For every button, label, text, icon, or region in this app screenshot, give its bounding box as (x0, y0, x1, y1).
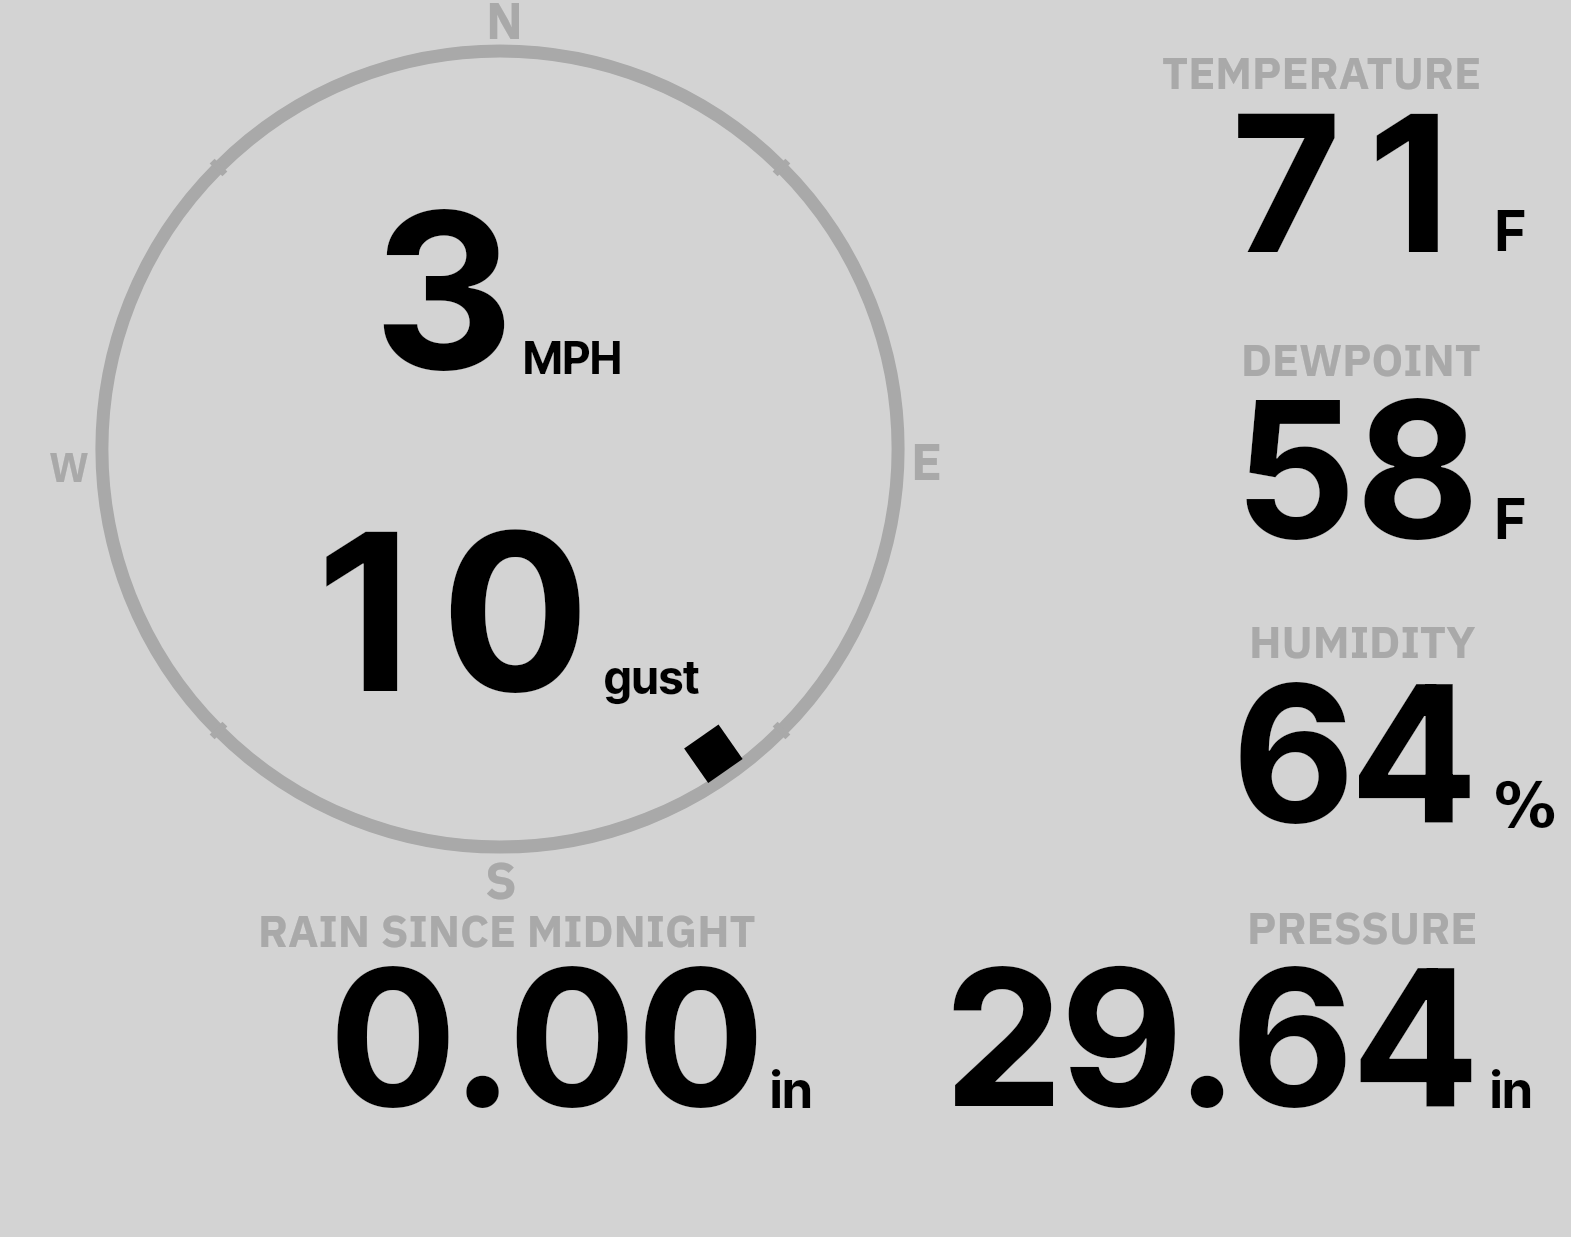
staticText: RAIN SINCE MIDNIGHT (258, 901, 756, 959)
staticText: gust (604, 649, 700, 705)
staticText: S (485, 847, 517, 913)
staticText: W (49, 440, 89, 493)
staticText: 71 (1234, 69, 1480, 298)
button[interactable]: Pressure 29.64 inches (930, 895, 1550, 1120)
button[interactable]: Dewpoint 58 degrees Fahrenheit (1140, 325, 1571, 555)
staticText: 0.00 (331, 923, 767, 1152)
button[interactable]: Temperature 71 degrees Fahrenheit (1140, 40, 1571, 270)
staticText: in (1490, 1059, 1533, 1121)
staticText: 64 (1234, 639, 1475, 868)
button[interactable]: Rain since midnight 0.00 inches (240, 895, 830, 1120)
staticText: DEWPOINT (1241, 330, 1481, 388)
button[interactable]: Wind direction compass, 3 miles per hour… (80, 30, 920, 870)
button[interactable]: Humidity 64 percent (1140, 608, 1571, 838)
staticText: MPH (523, 331, 622, 385)
staticText: % (1494, 769, 1557, 841)
staticText: 3 (376, 159, 513, 422)
staticText: HUMIDITY (1249, 612, 1476, 671)
staticText: PRESSURE (1247, 898, 1478, 956)
staticText: TEMPERATURE (1162, 43, 1482, 101)
staticText: E (911, 428, 942, 494)
staticText: 29.64 (947, 923, 1479, 1152)
staticText: 10 (320, 479, 623, 744)
staticText: 58 (1238, 355, 1482, 584)
staticText: in (770, 1059, 813, 1121)
staticText: F (1495, 485, 1526, 552)
staticText: N (486, 0, 523, 53)
staticText: F (1495, 197, 1526, 264)
